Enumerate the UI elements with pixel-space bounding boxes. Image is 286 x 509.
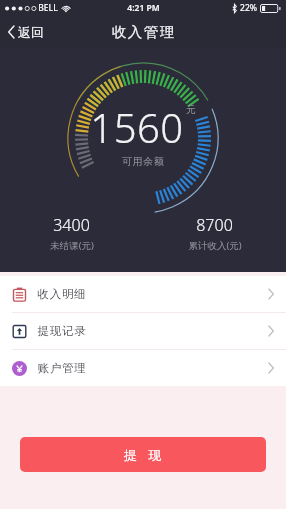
staticText: 3400: [53, 214, 90, 236]
staticText: 22%: [240, 2, 257, 14]
staticText: BELL: [38, 2, 58, 14]
staticText: 元: [186, 103, 196, 116]
staticText: 账户管理: [37, 361, 87, 375]
staticText: 收入明细: [37, 287, 87, 301]
staticText: 1560: [90, 100, 184, 154]
staticText: 收入管理: [111, 23, 175, 41]
staticText: 提现记录: [37, 324, 87, 338]
staticText: 4:21 PM: [127, 2, 160, 14]
button[interactable]: 返回: [0, 19, 56, 45]
staticText: 可用余额: [122, 155, 164, 168]
staticText: 8700: [196, 214, 233, 236]
staticText: 未结课(元): [50, 239, 94, 252]
button[interactable]: 收入明细: [0, 276, 286, 312]
staticText: 返回: [18, 24, 44, 40]
staticText: 累计收入(元): [188, 239, 242, 252]
button[interactable]: 账户管理: [0, 350, 286, 386]
staticText: 提 现: [124, 446, 163, 464]
button[interactable]: 提现记录: [0, 313, 286, 349]
button[interactable]: 提 现: [20, 437, 266, 472]
